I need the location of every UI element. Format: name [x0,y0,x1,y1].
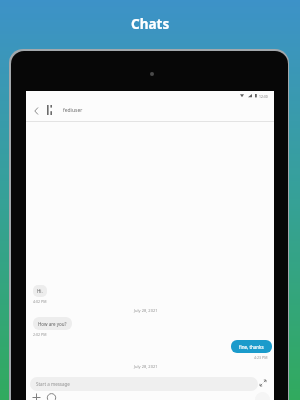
button[interactable]: Start a message [30,377,258,391]
staticText: Start a message [36,381,70,387]
button[interactable]: fediuser [26,101,274,120]
staticText: 2:02 PM [33,332,47,337]
staticText: 4:02 PM [33,299,47,304]
button[interactable] [259,379,267,387]
staticText: How are you? [38,321,67,327]
staticText: 4:23 PM [254,355,268,360]
staticText: fediuser [63,107,83,114]
staticText: fine, thanks [239,344,264,350]
staticText: July 28, 2021 [134,308,158,313]
button[interactable]: How are you? [33,317,72,330]
staticText: Hi. [37,288,43,294]
staticText: July 28, 2021 [134,364,158,369]
button[interactable] [32,393,58,400]
button[interactable]: Hi. [33,285,47,297]
button[interactable]: fine, thanks [231,340,272,353]
staticText: Chats [131,15,170,33]
staticText: 12:30 [259,94,268,99]
